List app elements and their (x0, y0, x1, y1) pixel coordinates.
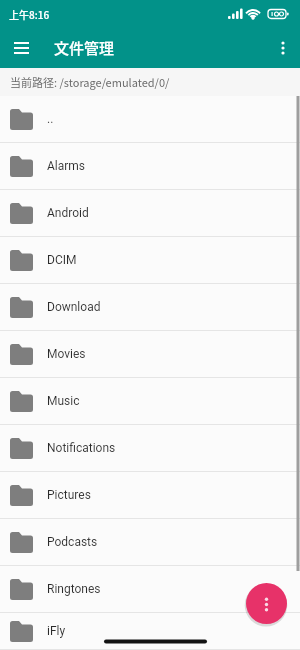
staticText: Alarms (47, 159, 86, 173)
staticText: Download (47, 300, 101, 314)
staticText: 文件管理 (54, 37, 115, 59)
button[interactable]: Notifications (0, 425, 300, 472)
button[interactable]: Podcasts (0, 519, 300, 566)
staticText: Notifications (47, 441, 116, 455)
staticText: Music (47, 394, 80, 408)
button[interactable]: Ringtones (0, 566, 300, 613)
button[interactable]: Music (0, 378, 300, 425)
staticText: Movies (47, 347, 86, 361)
staticText: 上午8:16 (9, 7, 50, 21)
button[interactable] (271, 36, 295, 60)
button[interactable]: Android (0, 190, 300, 237)
staticText: 当前路径: /storage/emulated/0/ (10, 74, 170, 90)
button[interactable]: DCIM (0, 237, 300, 284)
button[interactable] (246, 583, 287, 624)
staticText: Podcasts (47, 535, 98, 549)
staticText: .. (47, 112, 54, 126)
button[interactable]: Movies (0, 331, 300, 378)
button[interactable]: Download (0, 284, 300, 331)
staticText: Pictures (47, 488, 91, 502)
button[interactable]: Pictures (0, 472, 300, 519)
staticText: DCIM (47, 253, 77, 267)
button[interactable] (8, 34, 36, 62)
staticText: iFly (47, 624, 66, 638)
staticText: Ringtones (47, 582, 101, 596)
button[interactable]: iFly (0, 613, 300, 650)
staticText: Android (47, 206, 89, 220)
button[interactable]: Alarms (0, 143, 300, 190)
button[interactable]: .. (0, 96, 300, 143)
